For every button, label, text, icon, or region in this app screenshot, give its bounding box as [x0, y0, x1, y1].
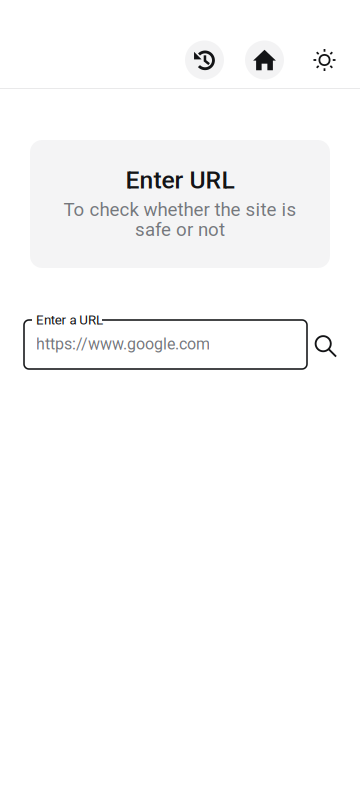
staticText: https://www.google.com: [36, 335, 210, 353]
staticText: safe or not: [135, 219, 225, 240]
button[interactable]: History: [185, 40, 224, 79]
staticText: To check whether the site is: [63, 199, 296, 220]
button[interactable]: Home: [245, 40, 284, 79]
staticText: Enter a URL: [36, 312, 103, 328]
button[interactable]: Search: [309, 330, 341, 362]
button[interactable]: Toggle light mode: [305, 40, 344, 79]
staticText: Enter URL: [125, 165, 234, 194]
